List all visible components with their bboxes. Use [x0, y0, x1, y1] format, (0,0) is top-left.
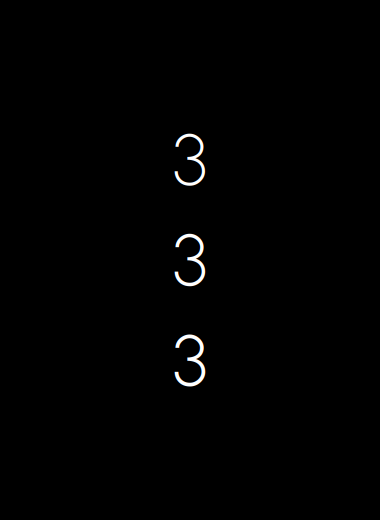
staticText: 3 [172, 317, 207, 404]
staticText: 3 [172, 217, 207, 303]
staticText: 3 [172, 116, 207, 203]
